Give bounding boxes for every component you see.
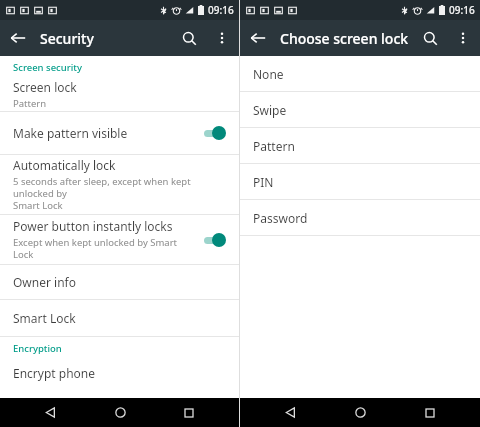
- staticText: Power button instantly locks: [13, 218, 173, 234]
- button[interactable]: None: [240, 56, 480, 91]
- button[interactable]: Make pattern visible: [0, 112, 239, 154]
- staticText: Choose screen lock: [280, 29, 409, 48]
- staticText: Encrypt phone: [13, 365, 95, 381]
- staticText: Password: [253, 210, 308, 226]
- button[interactable]: Screen lock: [0, 78, 239, 111]
- staticText: Screen security: [13, 61, 82, 74]
- button[interactable]: Smart Lock: [0, 300, 239, 336]
- button[interactable]: Swipe: [240, 92, 480, 127]
- button[interactable]: Home: [340, 398, 380, 427]
- staticText: None: [253, 66, 284, 82]
- staticText: Smart Lock: [13, 310, 76, 326]
- button[interactable]: More options: [207, 23, 237, 53]
- button[interactable]: Automatically lock: [0, 155, 239, 214]
- staticText: Automatically lock: [13, 157, 116, 173]
- button[interactable]: Search: [171, 20, 207, 56]
- button[interactable]: Power button instantly locks: [0, 215, 239, 264]
- staticText: Pattern: [253, 138, 295, 154]
- button[interactable]: Pattern: [240, 128, 480, 163]
- button[interactable]: Owner info: [0, 265, 239, 299]
- button[interactable]: Back: [240, 20, 276, 56]
- button[interactable]: Search: [412, 20, 448, 56]
- button[interactable]: Password: [240, 200, 480, 235]
- staticText: 5 seconds after sleep, except when kept …: [13, 175, 227, 212]
- button[interactable]: Back: [270, 398, 310, 427]
- button[interactable]: PIN: [240, 164, 480, 199]
- staticText: 09:16: [208, 3, 234, 17]
- button[interactable]: Recents: [169, 398, 209, 427]
- button[interactable]: Encrypt phone: [0, 359, 239, 387]
- staticText: Swipe: [253, 102, 287, 118]
- staticText: Encryption: [13, 342, 62, 355]
- staticText: Security: [40, 29, 94, 48]
- staticText: 09:16: [449, 3, 475, 17]
- button[interactable]: Home: [100, 398, 140, 427]
- staticText: Screen lock: [13, 79, 77, 95]
- staticText: Except when kept unlocked by Smart Lock: [13, 236, 193, 261]
- button[interactable]: Recents: [410, 398, 450, 427]
- staticText: Make pattern visible: [13, 125, 128, 141]
- button[interactable]: Back: [30, 398, 70, 427]
- button[interactable]: Back: [0, 20, 36, 56]
- staticText: Owner info: [13, 274, 76, 290]
- staticText: PIN: [253, 174, 274, 190]
- button[interactable]: More options: [448, 23, 478, 53]
- staticText: Pattern: [13, 97, 47, 110]
